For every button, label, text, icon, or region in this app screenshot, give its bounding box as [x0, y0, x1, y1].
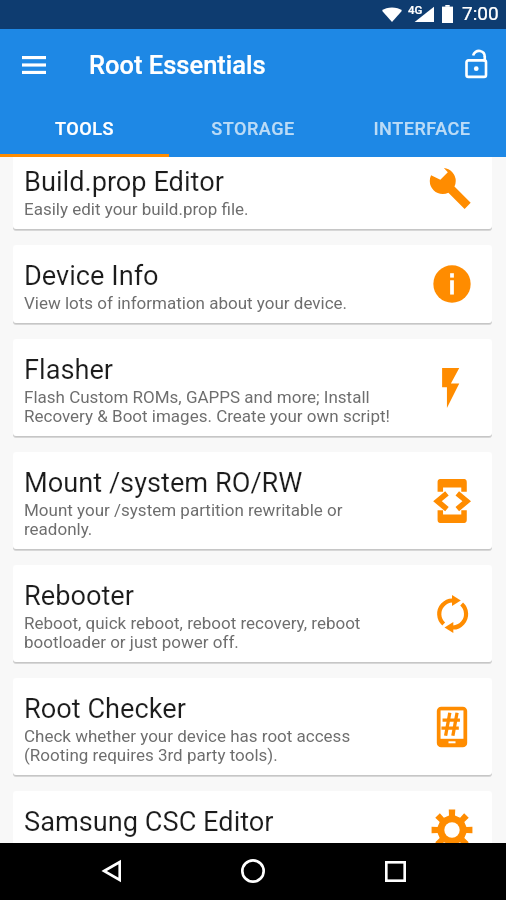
staticText: Mount your /system partition rewritable …	[24, 500, 403, 539]
button[interactable]: Samsung CSC Editor	[13, 791, 492, 869]
staticText: STORAGE	[211, 118, 295, 139]
staticText: Flash Custom ROMs, GAPPS and more; Insta…	[24, 387, 403, 426]
button[interactable]: STORAGE	[168, 100, 337, 157]
staticText: View lots of information about your devi…	[24, 293, 348, 313]
staticText: 4G	[408, 3, 423, 16]
button[interactable]: Root Checker	[13, 678, 492, 775]
staticText: Device Info	[24, 260, 159, 292]
staticText: Flasher	[24, 354, 114, 386]
staticText: Check whether your device has root acces…	[24, 726, 403, 765]
button[interactable]: INTERFACE	[337, 100, 506, 157]
button[interactable]: Home	[230, 848, 276, 894]
staticText: Change your CSC settings.	[24, 839, 225, 859]
staticText: Root Checker	[24, 693, 186, 725]
staticText: Rebooter	[24, 580, 134, 612]
button[interactable]: Rebooter	[13, 565, 492, 662]
staticText: Root Essentials	[89, 50, 266, 80]
staticText: TOOLS	[55, 118, 114, 139]
button[interactable]: TOOLS	[0, 100, 168, 157]
staticText: 7:00	[462, 2, 499, 24]
button[interactable]: Device Info	[13, 245, 492, 323]
button[interactable]: Back	[88, 848, 134, 894]
staticText: Samsung CSC Editor	[24, 806, 274, 838]
button[interactable]: Mount /system RO/RW	[13, 452, 492, 549]
button[interactable]: Unlock root access	[455, 41, 501, 87]
button[interactable]: Flasher	[13, 339, 492, 436]
staticText: Reboot, quick reboot, reboot recovery, r…	[24, 613, 403, 652]
staticText: INTERFACE	[373, 118, 471, 139]
staticText: Easily edit your build.prop file.	[24, 199, 249, 219]
staticText: Build.prop Editor	[24, 166, 224, 198]
button[interactable]: Recent apps	[372, 848, 418, 894]
button[interactable]: Open navigation menu	[11, 42, 57, 88]
staticText: Mount /system RO/RW	[24, 467, 303, 499]
button[interactable]: Build.prop Editor	[13, 151, 492, 229]
